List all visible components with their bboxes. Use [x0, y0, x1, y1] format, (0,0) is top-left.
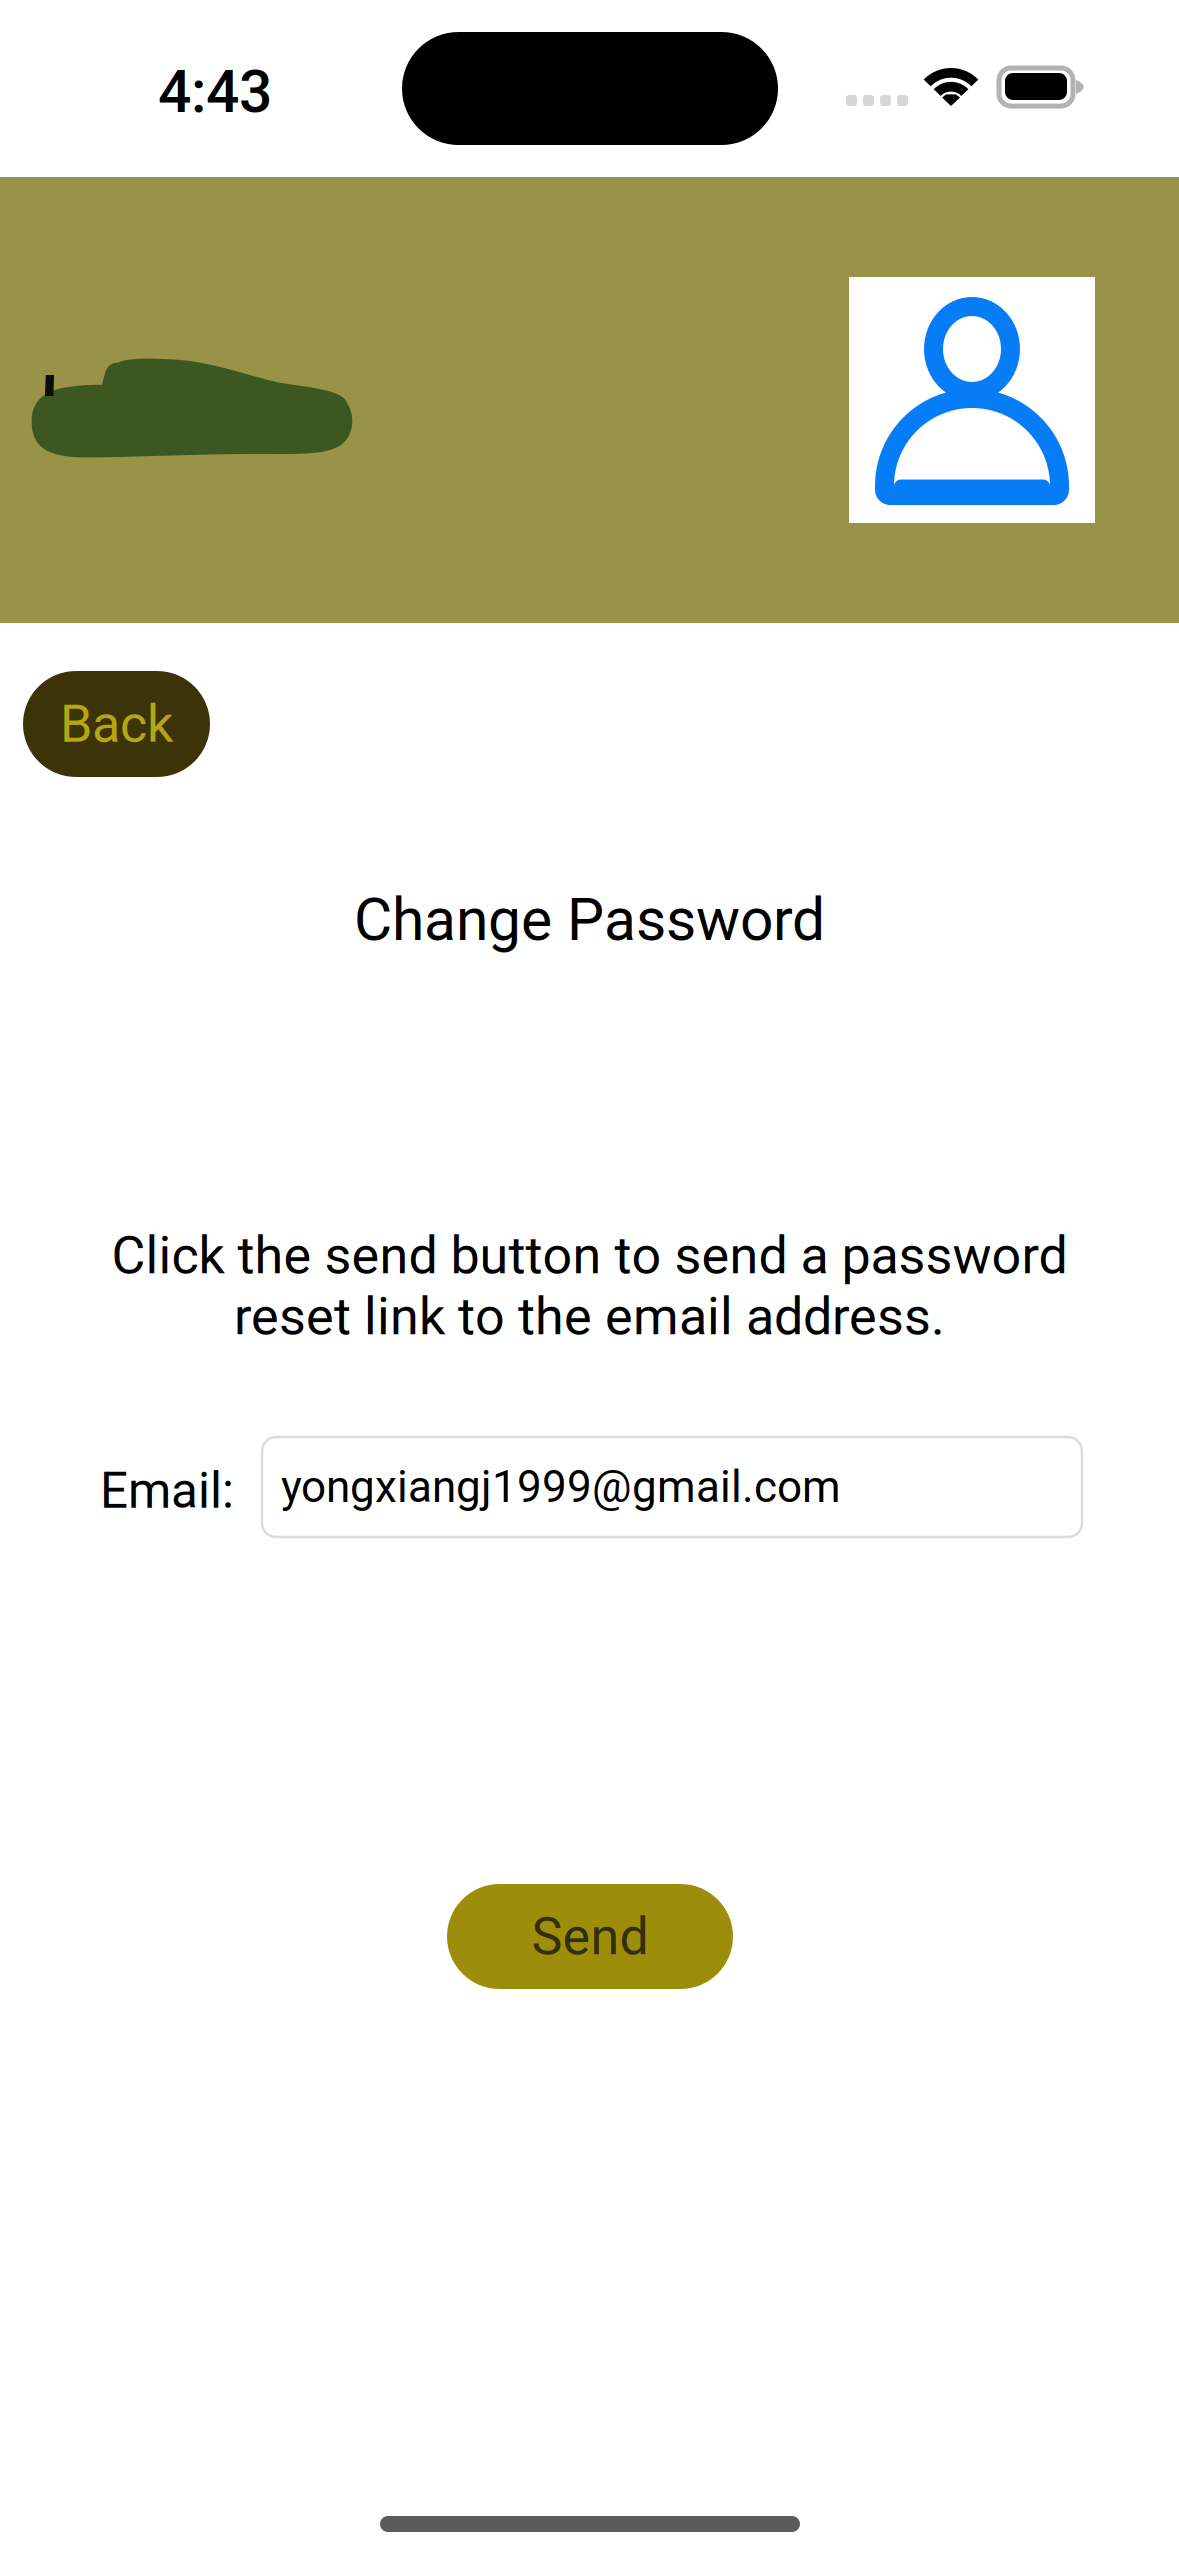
staticText: yongxiangj1999@gmail.com	[281, 1461, 841, 1513]
button[interactable]: yongxiangj1999@gmail.com	[262, 1437, 1082, 1537]
staticText: Click the send button to send a password	[111, 1225, 1067, 1286]
button[interactable]: Back	[23, 671, 210, 777]
staticText: Email:	[100, 1462, 234, 1520]
staticText: 4:43	[158, 58, 272, 126]
staticText: Send	[531, 1906, 648, 1967]
button[interactable]: Send	[447, 1884, 733, 1989]
staticText: Change Password	[354, 886, 825, 954]
staticText: reset link to the email address.	[234, 1286, 945, 1347]
staticText: Back	[60, 693, 173, 754]
button[interactable]: Profile	[849, 277, 1095, 523]
